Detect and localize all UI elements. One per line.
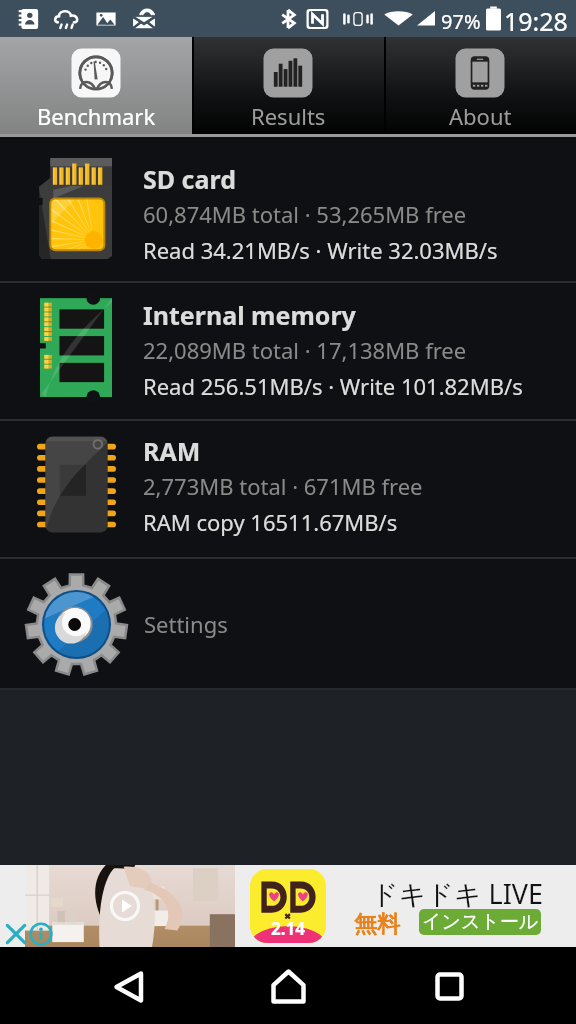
button[interactable]: RAM [0,421,576,557]
staticText: RAM copy 16511.67MB/s [143,507,398,537]
staticText: 97% [441,8,481,35]
staticText: 2,773MB total · 671MB free [143,471,423,501]
staticText: Settings [144,609,228,639]
staticText: 19:28 [504,4,568,38]
button[interactable]: Results [192,37,384,134]
button[interactable]: About [384,37,576,134]
staticText: Read 34.21MB/s · Write 32.03MB/s [143,235,498,265]
button[interactable]: Internal memory [0,283,576,419]
staticText: SD card [143,162,236,196]
button[interactable]: 2.14 [0,865,576,947]
staticText: 60,874MB total · 53,265MB free [143,199,467,229]
staticText: 22,089MB total · 17,138MB free [143,335,467,365]
staticText: Benchmark [37,101,156,131]
staticText: ドキドキ LIVE [371,875,544,912]
staticText: About [449,101,512,131]
staticText: RAM [143,434,201,468]
staticText: インストール [422,910,539,934]
button[interactable]: Benchmark [0,37,192,134]
button[interactable]: SD card [0,137,576,281]
staticText: 2.14 [271,917,305,940]
button[interactable]: Settings [0,559,576,688]
staticText: Internal memory [143,298,356,332]
button[interactable]: インストール [419,909,541,935]
button[interactable]: Back [64,947,192,1024]
staticText: Read 256.51MB/s · Write 101.82MB/s [143,371,523,401]
button[interactable]: Recent apps [385,947,513,1024]
button[interactable]: Home [224,947,352,1024]
staticText: Results [251,101,326,131]
staticText: 無料 [354,910,400,939]
